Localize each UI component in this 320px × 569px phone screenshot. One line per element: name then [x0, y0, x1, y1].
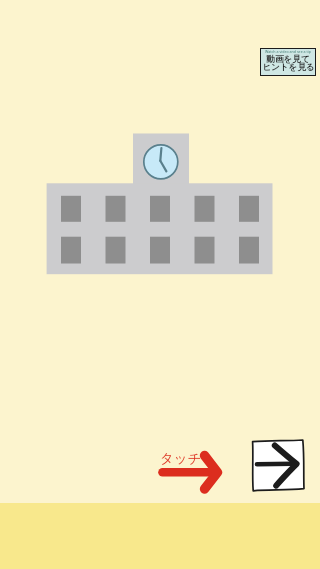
staticText: ヒントを見る	[262, 62, 315, 73]
staticText: 動画を見て	[266, 54, 310, 65]
button[interactable]: Watch a video and see a tip	[261, 49, 315, 75]
staticText: タッチ	[160, 450, 202, 467]
button[interactable]: Next	[251, 439, 305, 492]
staticText: Watch a video and see a tip	[265, 49, 311, 54]
